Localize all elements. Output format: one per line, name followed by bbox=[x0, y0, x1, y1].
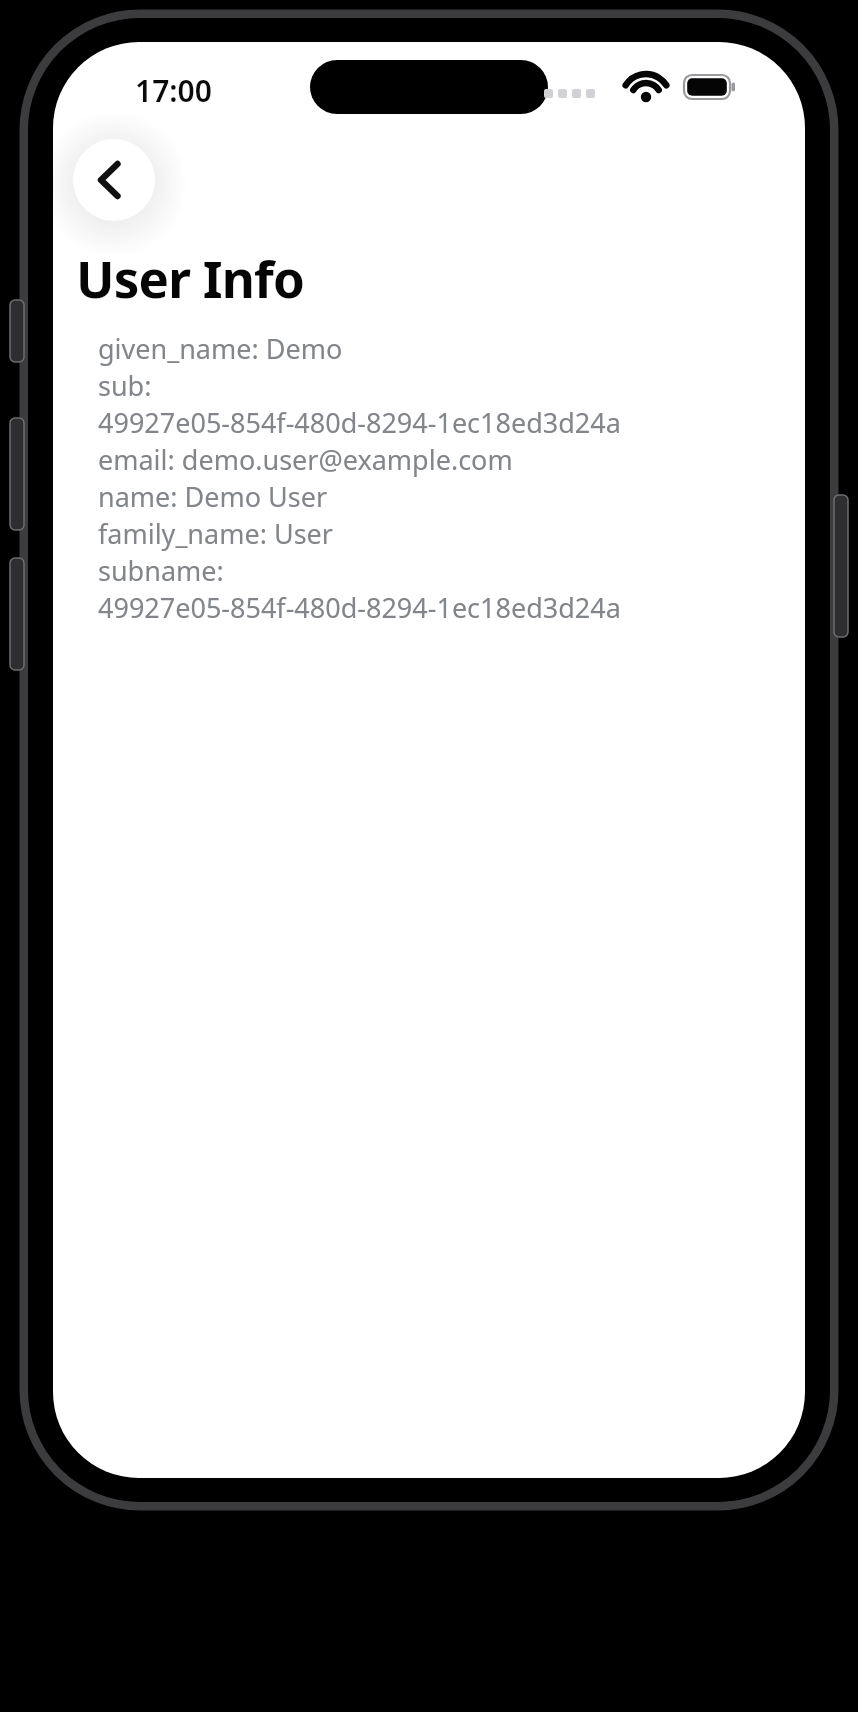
staticText: User Info bbox=[76, 243, 305, 312]
staticText: subname: bbox=[98, 552, 224, 589]
staticText: sub: bbox=[98, 367, 152, 404]
button[interactable]: Back bbox=[73, 139, 155, 221]
staticText: 17:00 bbox=[135, 70, 212, 111]
staticText: name: Demo User bbox=[98, 478, 328, 515]
staticText: 49927e05-854f-480d-8294-1ec18ed3d24a bbox=[98, 404, 621, 441]
staticText: family_name: User bbox=[98, 515, 333, 552]
staticText: email: demo.user@example.com bbox=[98, 441, 513, 478]
staticText: given_name: Demo bbox=[98, 330, 343, 367]
staticText: 49927e05-854f-480d-8294-1ec18ed3d24a bbox=[98, 589, 621, 626]
